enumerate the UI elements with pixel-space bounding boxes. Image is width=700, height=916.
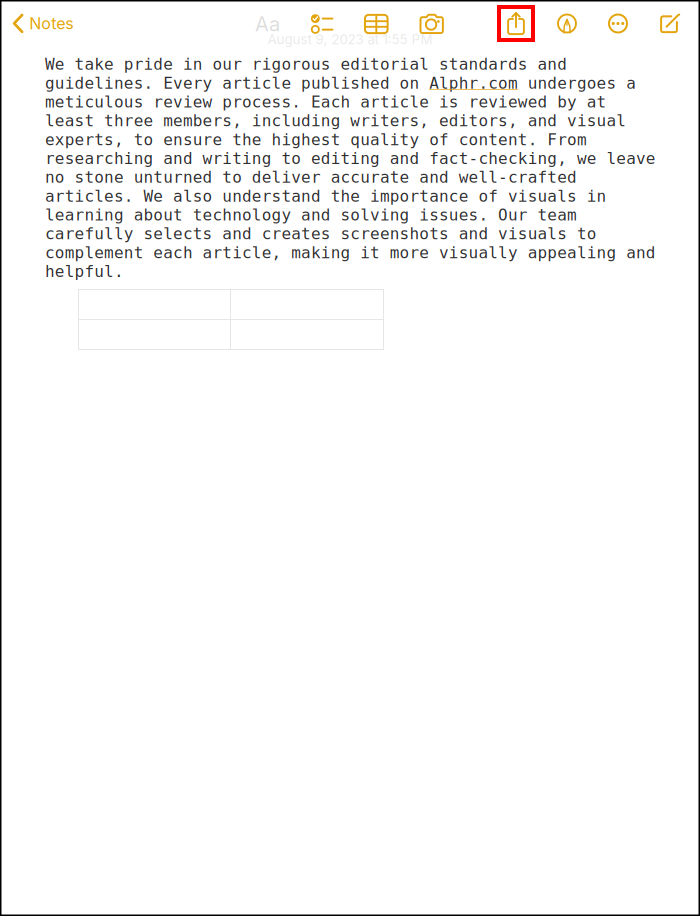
staticText: Notes: [29, 14, 73, 33]
button[interactable]: New note: [648, 3, 692, 43]
button[interactable]: Notes: [0, 1, 86, 45]
button[interactable]: Share: [497, 5, 535, 42]
button[interactable]: Format: [245, 4, 289, 44]
staticText: We take pride in our rigorous editorial …: [45, 55, 656, 281]
staticText: Aa: [255, 12, 280, 36]
staticText: August 9, 2023 at 1:55 PM: [267, 31, 432, 47]
button[interactable]: Checklist: [300, 4, 344, 44]
button[interactable]: Table: [354, 4, 398, 44]
button[interactable]: Markup: [545, 3, 589, 43]
button[interactable]: Camera: [410, 4, 454, 44]
button[interactable]: More: [596, 3, 640, 43]
